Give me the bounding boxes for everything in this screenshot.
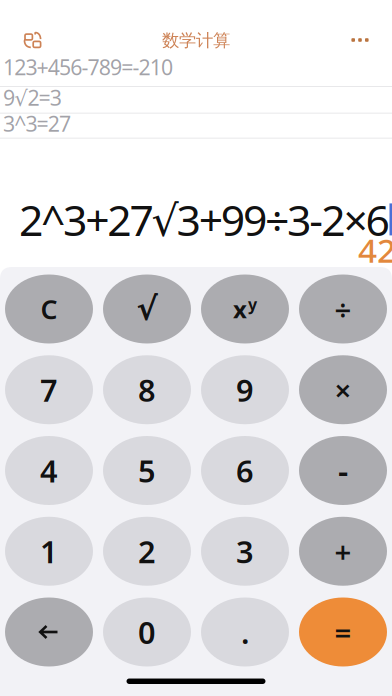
button[interactable]: √ xyxy=(103,274,191,343)
staticText: 2 xyxy=(138,531,156,572)
staticText: 6 xyxy=(236,450,254,491)
staticText: 8 xyxy=(138,369,156,410)
staticText: 42 xyxy=(358,228,392,272)
button[interactable]: 3 xyxy=(201,517,289,586)
staticText: 4 xyxy=(40,450,58,491)
button[interactable]: 3^3=27 xyxy=(0,111,392,137)
button[interactable]: 6 xyxy=(201,436,289,505)
staticText: ÷ xyxy=(334,289,351,328)
staticText: 9 xyxy=(236,369,254,410)
button[interactable]: 5 xyxy=(103,436,191,505)
button[interactable]: 退格 xyxy=(5,597,93,666)
button[interactable]: . xyxy=(201,597,289,666)
button[interactable]: 2 xyxy=(103,517,191,586)
button[interactable]: 7 xyxy=(5,355,93,424)
staticText: 3^3=27 xyxy=(3,109,71,138)
button[interactable]: 更多 xyxy=(345,24,375,54)
staticText: 数学计算 xyxy=(162,30,230,51)
button[interactable]: × xyxy=(299,355,387,424)
staticText: . xyxy=(241,612,249,652)
button[interactable]: 9√2=3 xyxy=(0,87,392,111)
button[interactable]: 0 xyxy=(103,597,191,666)
button[interactable]: 乘方 xyxy=(201,274,289,343)
staticText: 0 xyxy=(138,612,156,652)
staticText: x xyxy=(233,293,247,325)
staticText: × xyxy=(334,370,351,409)
button[interactable]: 1 xyxy=(5,517,93,586)
staticText: √ xyxy=(136,291,157,327)
button[interactable]: ÷ xyxy=(299,274,387,343)
staticText: 1 xyxy=(40,531,58,572)
staticText: 7 xyxy=(40,369,58,410)
button[interactable]: - xyxy=(299,436,387,505)
staticText: = xyxy=(334,612,351,651)
staticText: C xyxy=(40,291,57,327)
button[interactable]: 4 xyxy=(5,436,93,505)
staticText: + xyxy=(334,532,351,571)
staticText: 9√2=3 xyxy=(3,83,62,112)
button[interactable]: C xyxy=(5,274,93,343)
staticText: - xyxy=(338,449,348,492)
button[interactable]: 8 xyxy=(103,355,191,424)
button[interactable]: 9 xyxy=(201,355,289,424)
staticText: 123+456-789=-210 xyxy=(3,53,173,81)
staticText: 5 xyxy=(138,450,156,491)
button[interactable]: = xyxy=(299,597,387,666)
staticText: y xyxy=(248,293,257,315)
staticText: 2^3+27√3+99÷3-2×6 xyxy=(19,191,389,248)
button[interactable]: 切换模式 xyxy=(16,24,50,54)
staticText: 3 xyxy=(236,531,254,572)
button[interactable]: + xyxy=(299,517,387,586)
button[interactable]: 123+456-789=-210 xyxy=(0,56,392,87)
